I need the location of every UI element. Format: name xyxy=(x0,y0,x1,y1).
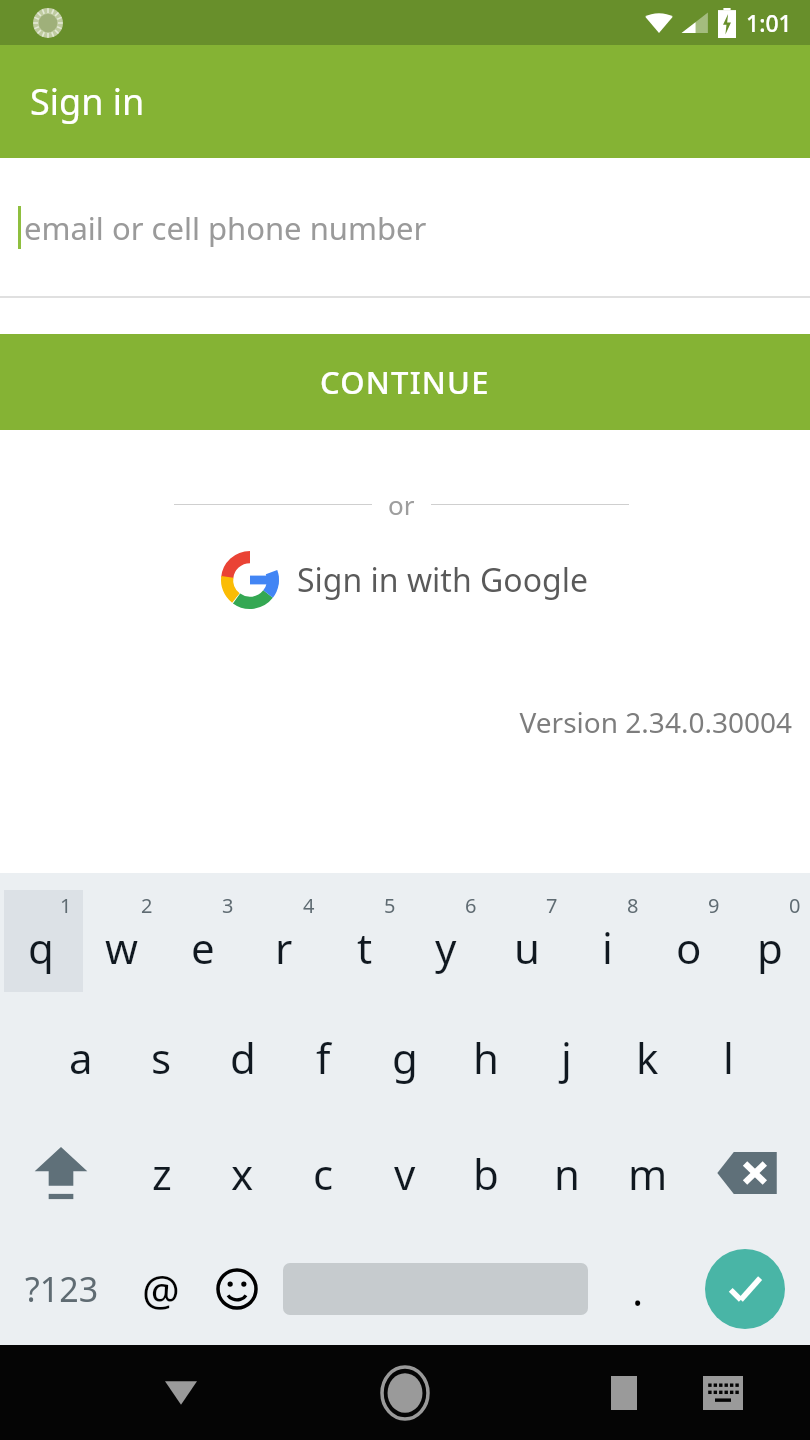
button[interactable]: Backspace xyxy=(688,1122,810,1224)
button[interactable]: o xyxy=(648,890,729,992)
staticText: Sign in xyxy=(30,77,145,126)
staticText: n xyxy=(554,1145,580,1202)
staticText: 0 xyxy=(789,892,801,919)
staticText: 1 xyxy=(60,892,72,919)
staticText: 2 xyxy=(141,892,153,919)
button[interactable]: u xyxy=(486,890,567,992)
staticText: 5 xyxy=(384,892,396,919)
staticText: q xyxy=(28,919,54,976)
staticText: g xyxy=(392,1029,418,1086)
staticText: y xyxy=(435,919,457,976)
staticText: c xyxy=(313,1145,334,1202)
staticText: or xyxy=(388,487,415,521)
button[interactable]: h xyxy=(445,1006,526,1108)
button[interactable]: v xyxy=(364,1122,445,1224)
staticText: ?123 xyxy=(25,1266,99,1312)
staticText: Sign in with Google xyxy=(297,558,589,602)
button[interactable]: CONTINUE xyxy=(0,334,810,430)
staticText: d xyxy=(230,1029,256,1086)
button[interactable]: @ xyxy=(123,1238,199,1340)
staticText: i xyxy=(602,919,613,976)
staticText: r xyxy=(275,919,293,976)
button[interactable]: q xyxy=(0,890,81,992)
staticText: 7 xyxy=(546,892,558,919)
staticText: s xyxy=(151,1029,172,1086)
button[interactable]: Space xyxy=(275,1238,596,1340)
button[interactable]: email or cell phone number xyxy=(0,158,810,296)
staticText: k xyxy=(636,1029,659,1086)
button[interactable]: Sign in with Google xyxy=(211,543,599,617)
button[interactable]: k xyxy=(607,1006,688,1108)
button[interactable]: n xyxy=(526,1122,607,1224)
button[interactable]: . xyxy=(596,1238,680,1340)
button[interactable]: s xyxy=(121,1006,202,1108)
staticText: z xyxy=(152,1145,172,1202)
staticText: a xyxy=(69,1029,93,1086)
button[interactable]: w xyxy=(81,890,162,992)
button[interactable]: t xyxy=(324,890,405,992)
staticText: j xyxy=(561,1029,572,1086)
staticText: h xyxy=(473,1029,499,1086)
button[interactable]: y xyxy=(405,890,486,992)
button[interactable]: z xyxy=(121,1122,202,1224)
staticText: p xyxy=(757,919,783,976)
staticText: m xyxy=(628,1145,668,1202)
button[interactable]: e xyxy=(162,890,243,992)
staticText: t xyxy=(357,919,373,976)
button[interactable]: Back xyxy=(150,1362,212,1424)
staticText: 8 xyxy=(627,892,639,919)
button[interactable]: f xyxy=(283,1006,364,1108)
staticText: b xyxy=(473,1145,499,1202)
staticText: . xyxy=(632,1261,644,1318)
staticText: CONTINUE xyxy=(320,361,490,403)
staticText: 6 xyxy=(465,892,477,919)
staticText: v xyxy=(394,1145,416,1202)
button[interactable]: Shift xyxy=(0,1122,121,1224)
button[interactable]: Emoji xyxy=(199,1238,275,1340)
staticText: x xyxy=(231,1145,254,1202)
button[interactable]: b xyxy=(445,1122,526,1224)
staticText: 1:01 xyxy=(746,7,792,38)
staticText: f xyxy=(316,1029,331,1086)
button[interactable]: x xyxy=(202,1122,283,1224)
staticText: 3 xyxy=(222,892,234,919)
staticText: l xyxy=(723,1029,734,1086)
staticText: 4 xyxy=(303,892,315,919)
staticText: w xyxy=(105,919,139,976)
button[interactable]: ?123 xyxy=(0,1238,123,1340)
button[interactable]: c xyxy=(283,1122,364,1224)
button[interactable]: a xyxy=(40,1006,121,1108)
button[interactable]: g xyxy=(364,1006,445,1108)
staticText: u xyxy=(514,919,540,976)
button[interactable]: Home xyxy=(372,1360,438,1426)
button[interactable]: l xyxy=(688,1006,769,1108)
staticText: o xyxy=(676,919,702,976)
button[interactable]: i xyxy=(567,890,648,992)
staticText: e xyxy=(191,919,215,976)
button[interactable]: m xyxy=(607,1122,688,1224)
button[interactable]: r xyxy=(243,890,324,992)
button[interactable]: j xyxy=(526,1006,607,1108)
button[interactable]: p xyxy=(729,890,810,992)
staticText: Version 2.34.0.30004 xyxy=(0,703,792,741)
staticText: 9 xyxy=(708,892,720,919)
button[interactable]: d xyxy=(202,1006,283,1108)
staticText: @ xyxy=(142,1261,180,1318)
button[interactable]: Hide keyboard xyxy=(692,1362,754,1424)
button[interactable]: Recents xyxy=(593,1362,655,1424)
button[interactable]: Enter xyxy=(680,1238,810,1340)
staticText: email or cell phone number xyxy=(24,207,427,249)
